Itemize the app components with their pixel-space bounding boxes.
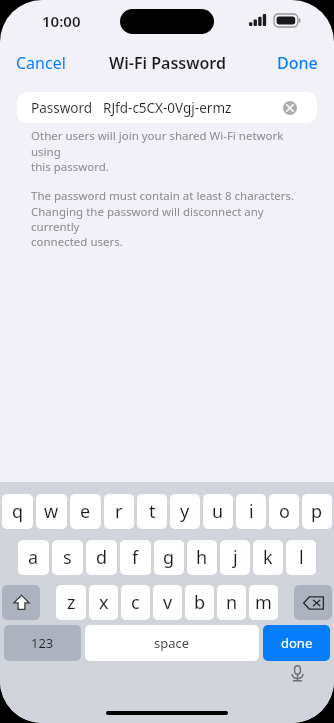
staticText: RJfd-c5CX-0Vgj-ermz (103, 99, 232, 117)
button[interactable]: f (120, 540, 151, 575)
staticText: d (96, 545, 108, 570)
staticText: t (149, 499, 156, 524)
button[interactable]: y (170, 494, 200, 529)
staticText: g (163, 545, 175, 570)
button[interactable]: q (2, 494, 33, 529)
staticText: z (67, 590, 76, 615)
staticText: 10:00 (42, 11, 81, 31)
button[interactable]: o (269, 494, 299, 529)
staticText: n (226, 590, 238, 615)
button[interactable]: Clear text (281, 99, 299, 117)
staticText: c (131, 590, 140, 615)
staticText: i (249, 499, 254, 524)
button[interactable]: k (253, 540, 283, 575)
staticText: e (80, 499, 91, 524)
staticText: p (311, 499, 323, 524)
staticText: Wi-Fi Password (109, 52, 226, 74)
button[interactable]: done (263, 625, 330, 661)
staticText: s (63, 545, 72, 570)
staticText: j (233, 545, 238, 570)
staticText: b (194, 590, 206, 615)
staticText: v (163, 590, 173, 615)
button[interactable]: z (56, 585, 86, 620)
button[interactable]: l (286, 540, 316, 575)
staticText: done (281, 634, 313, 652)
button[interactable]: Shift (2, 585, 40, 620)
button[interactable]: a (18, 540, 49, 575)
staticText: 123 (31, 634, 54, 652)
staticText: y (180, 499, 190, 524)
staticText: Done (277, 52, 318, 74)
staticText: a (28, 545, 39, 570)
button[interactable]: p (302, 494, 332, 529)
button[interactable]: space (85, 625, 259, 661)
button[interactable]: Dictation (285, 661, 309, 685)
staticText: Other users will join your shared Wi-Fi … (31, 128, 303, 174)
button[interactable]: u (203, 494, 233, 529)
button[interactable]: w (36, 494, 67, 529)
button[interactable]: j (220, 540, 250, 575)
button[interactable]: 123 (4, 625, 81, 661)
button[interactable]: g (154, 540, 184, 575)
staticText: m (255, 590, 272, 615)
staticText: The password must contain at least 8 cha… (31, 188, 303, 249)
button[interactable]: s (52, 540, 83, 575)
button[interactable]: r (104, 494, 134, 529)
staticText: u (212, 499, 224, 524)
staticText: h (196, 545, 208, 570)
staticText: f (132, 545, 139, 570)
button[interactable]: h (187, 540, 217, 575)
staticText: l (299, 545, 304, 570)
staticText: Password (31, 99, 93, 117)
button[interactable]: i (236, 494, 266, 529)
staticText: space (154, 634, 190, 652)
staticText: r (115, 499, 123, 524)
button[interactable]: Password (17, 92, 317, 123)
button[interactable]: Backspace (294, 585, 332, 620)
button[interactable]: v (153, 585, 182, 620)
button[interactable]: c (121, 585, 150, 620)
button[interactable]: m (249, 585, 278, 620)
staticText: w (44, 499, 59, 524)
staticText: o (279, 499, 290, 524)
button[interactable]: b (185, 585, 214, 620)
button[interactable]: Done (269, 46, 326, 80)
staticText: k (263, 545, 273, 570)
button[interactable]: t (137, 494, 167, 529)
button[interactable]: e (70, 494, 101, 529)
button[interactable]: Cancel (8, 46, 74, 80)
staticText: q (12, 499, 24, 524)
button[interactable]: x (89, 585, 118, 620)
staticText: x (99, 590, 109, 615)
staticText: Cancel (16, 52, 66, 74)
button[interactable]: n (217, 585, 246, 620)
button[interactable]: d (86, 540, 117, 575)
